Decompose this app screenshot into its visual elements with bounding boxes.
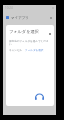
staticText: フォルダを選択 (25, 48, 44, 51)
staticText: フォルダを選択 (9, 29, 39, 34)
staticText: 10:24 (5, 6, 13, 10)
button[interactable]: More options (48, 15, 53, 20)
button[interactable]: Info (48, 32, 51, 35)
staticText: キャンセル (9, 48, 23, 51)
staticText: マイアプリ (11, 16, 29, 20)
staticText: 保存先のフォルダを選んでください (9, 39, 51, 45)
button[interactable]: Headphones (34, 92, 45, 103)
button[interactable]: フォルダを選択 (25, 48, 44, 51)
